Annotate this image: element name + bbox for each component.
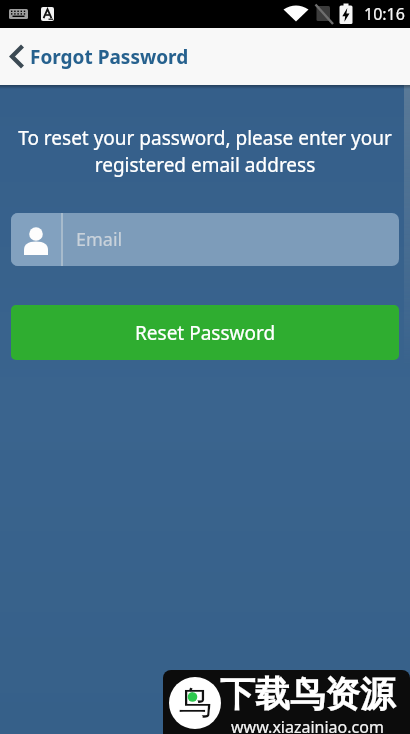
staticText: Email [76,227,123,252]
button[interactable]: Email [11,213,399,266]
staticText: 鸟 [179,682,212,724]
staticText: 下载鸟资源 [220,672,395,716]
button[interactable]: Reset Password [11,305,399,360]
staticText: Forgot Password [30,44,189,70]
button[interactable]: Forgot Password [0,28,410,85]
staticText: www.xiazainiao.com [231,716,384,734]
staticText: Reset Password [135,320,276,346]
staticText: To reset your password, please enter you… [0,125,410,178]
button[interactable]: 鸟 [163,670,410,734]
staticText: 10:16 [364,3,405,25]
